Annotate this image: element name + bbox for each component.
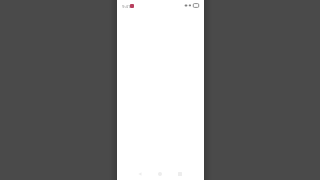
staticText: 9:41 [122, 3, 131, 9]
button[interactable]: Recent apps [173, 167, 187, 180]
button[interactable]: Home [153, 167, 167, 180]
